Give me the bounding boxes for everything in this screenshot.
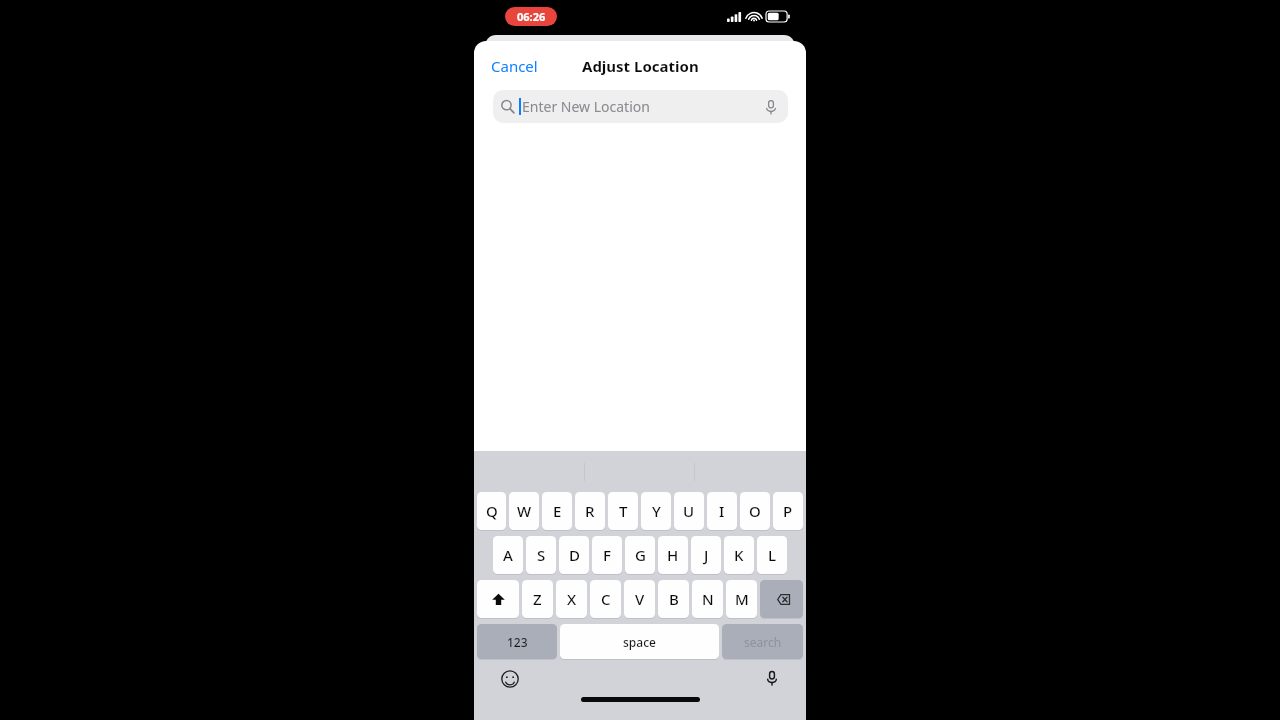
button[interactable]: space xyxy=(560,624,719,659)
button[interactable]: V xyxy=(624,580,655,618)
button[interactable]: J xyxy=(691,536,721,574)
staticText: Q xyxy=(486,501,498,521)
staticText: Enter New Location xyxy=(522,97,650,116)
button[interactable]: Voice search xyxy=(762,98,780,116)
staticText: A xyxy=(503,545,513,565)
staticText: I xyxy=(719,501,725,521)
staticText: search xyxy=(744,634,782,650)
button[interactable]: I xyxy=(707,492,737,530)
button[interactable]: R xyxy=(575,492,605,530)
staticText: B xyxy=(669,589,679,609)
button[interactable]: E xyxy=(542,492,572,530)
staticText: O xyxy=(749,501,761,521)
button[interactable]: 123 xyxy=(477,624,557,659)
button[interactable]: X xyxy=(556,580,587,618)
staticText: R xyxy=(585,501,595,521)
button[interactable]: Emoji keyboard xyxy=(498,667,522,691)
staticText: Cancel xyxy=(491,56,538,76)
staticText: W xyxy=(517,501,532,521)
button[interactable]: S xyxy=(526,536,556,574)
button[interactable]: K xyxy=(724,536,754,574)
staticText: 06:26 xyxy=(517,9,546,24)
staticText: 123 xyxy=(507,634,528,650)
button[interactable]: Y xyxy=(641,492,671,530)
staticText: T xyxy=(619,501,628,521)
button[interactable]: Dictation xyxy=(760,666,784,690)
button[interactable]: M xyxy=(726,580,757,618)
button[interactable]: B xyxy=(658,580,689,618)
button[interactable]: Enter New Location xyxy=(493,90,788,123)
staticText: G xyxy=(635,545,646,565)
staticText: Adjust Location xyxy=(582,56,699,76)
staticText: M xyxy=(735,589,749,609)
staticText: S xyxy=(537,545,546,565)
button[interactable]: U xyxy=(674,492,704,530)
staticText: P xyxy=(783,501,793,521)
button[interactable]: N xyxy=(692,580,723,618)
button[interactable]: Backspace xyxy=(760,580,803,618)
button[interactable]: Cancel xyxy=(483,50,546,82)
button[interactable]: Z xyxy=(522,580,553,618)
staticText: L xyxy=(768,545,777,565)
button[interactable]: A xyxy=(493,536,523,574)
staticText: K xyxy=(734,545,744,565)
button[interactable]: H xyxy=(658,536,688,574)
button[interactable]: P xyxy=(773,492,803,530)
staticText: C xyxy=(601,589,611,609)
button[interactable]: F xyxy=(592,536,622,574)
staticText: V xyxy=(635,589,645,609)
button[interactable]: D xyxy=(559,536,589,574)
staticText: N xyxy=(702,589,714,609)
button[interactable]: W xyxy=(509,492,539,530)
staticText: E xyxy=(553,501,562,521)
staticText: D xyxy=(569,545,580,565)
staticText: X xyxy=(567,589,577,609)
staticText: F xyxy=(603,545,611,565)
button[interactable]: Q xyxy=(477,492,506,530)
staticText: Z xyxy=(533,589,542,609)
button[interactable]: L xyxy=(757,536,787,574)
staticText: space xyxy=(623,634,656,650)
staticText: Y xyxy=(652,501,661,521)
staticText: U xyxy=(683,501,695,521)
button[interactable]: Shift xyxy=(477,580,519,618)
staticText: H xyxy=(667,545,679,565)
button[interactable]: T xyxy=(608,492,638,530)
button[interactable]: C xyxy=(590,580,621,618)
staticText: J xyxy=(704,545,709,565)
button[interactable]: G xyxy=(625,536,655,574)
button[interactable]: O xyxy=(740,492,770,530)
button[interactable]: search xyxy=(722,624,803,659)
